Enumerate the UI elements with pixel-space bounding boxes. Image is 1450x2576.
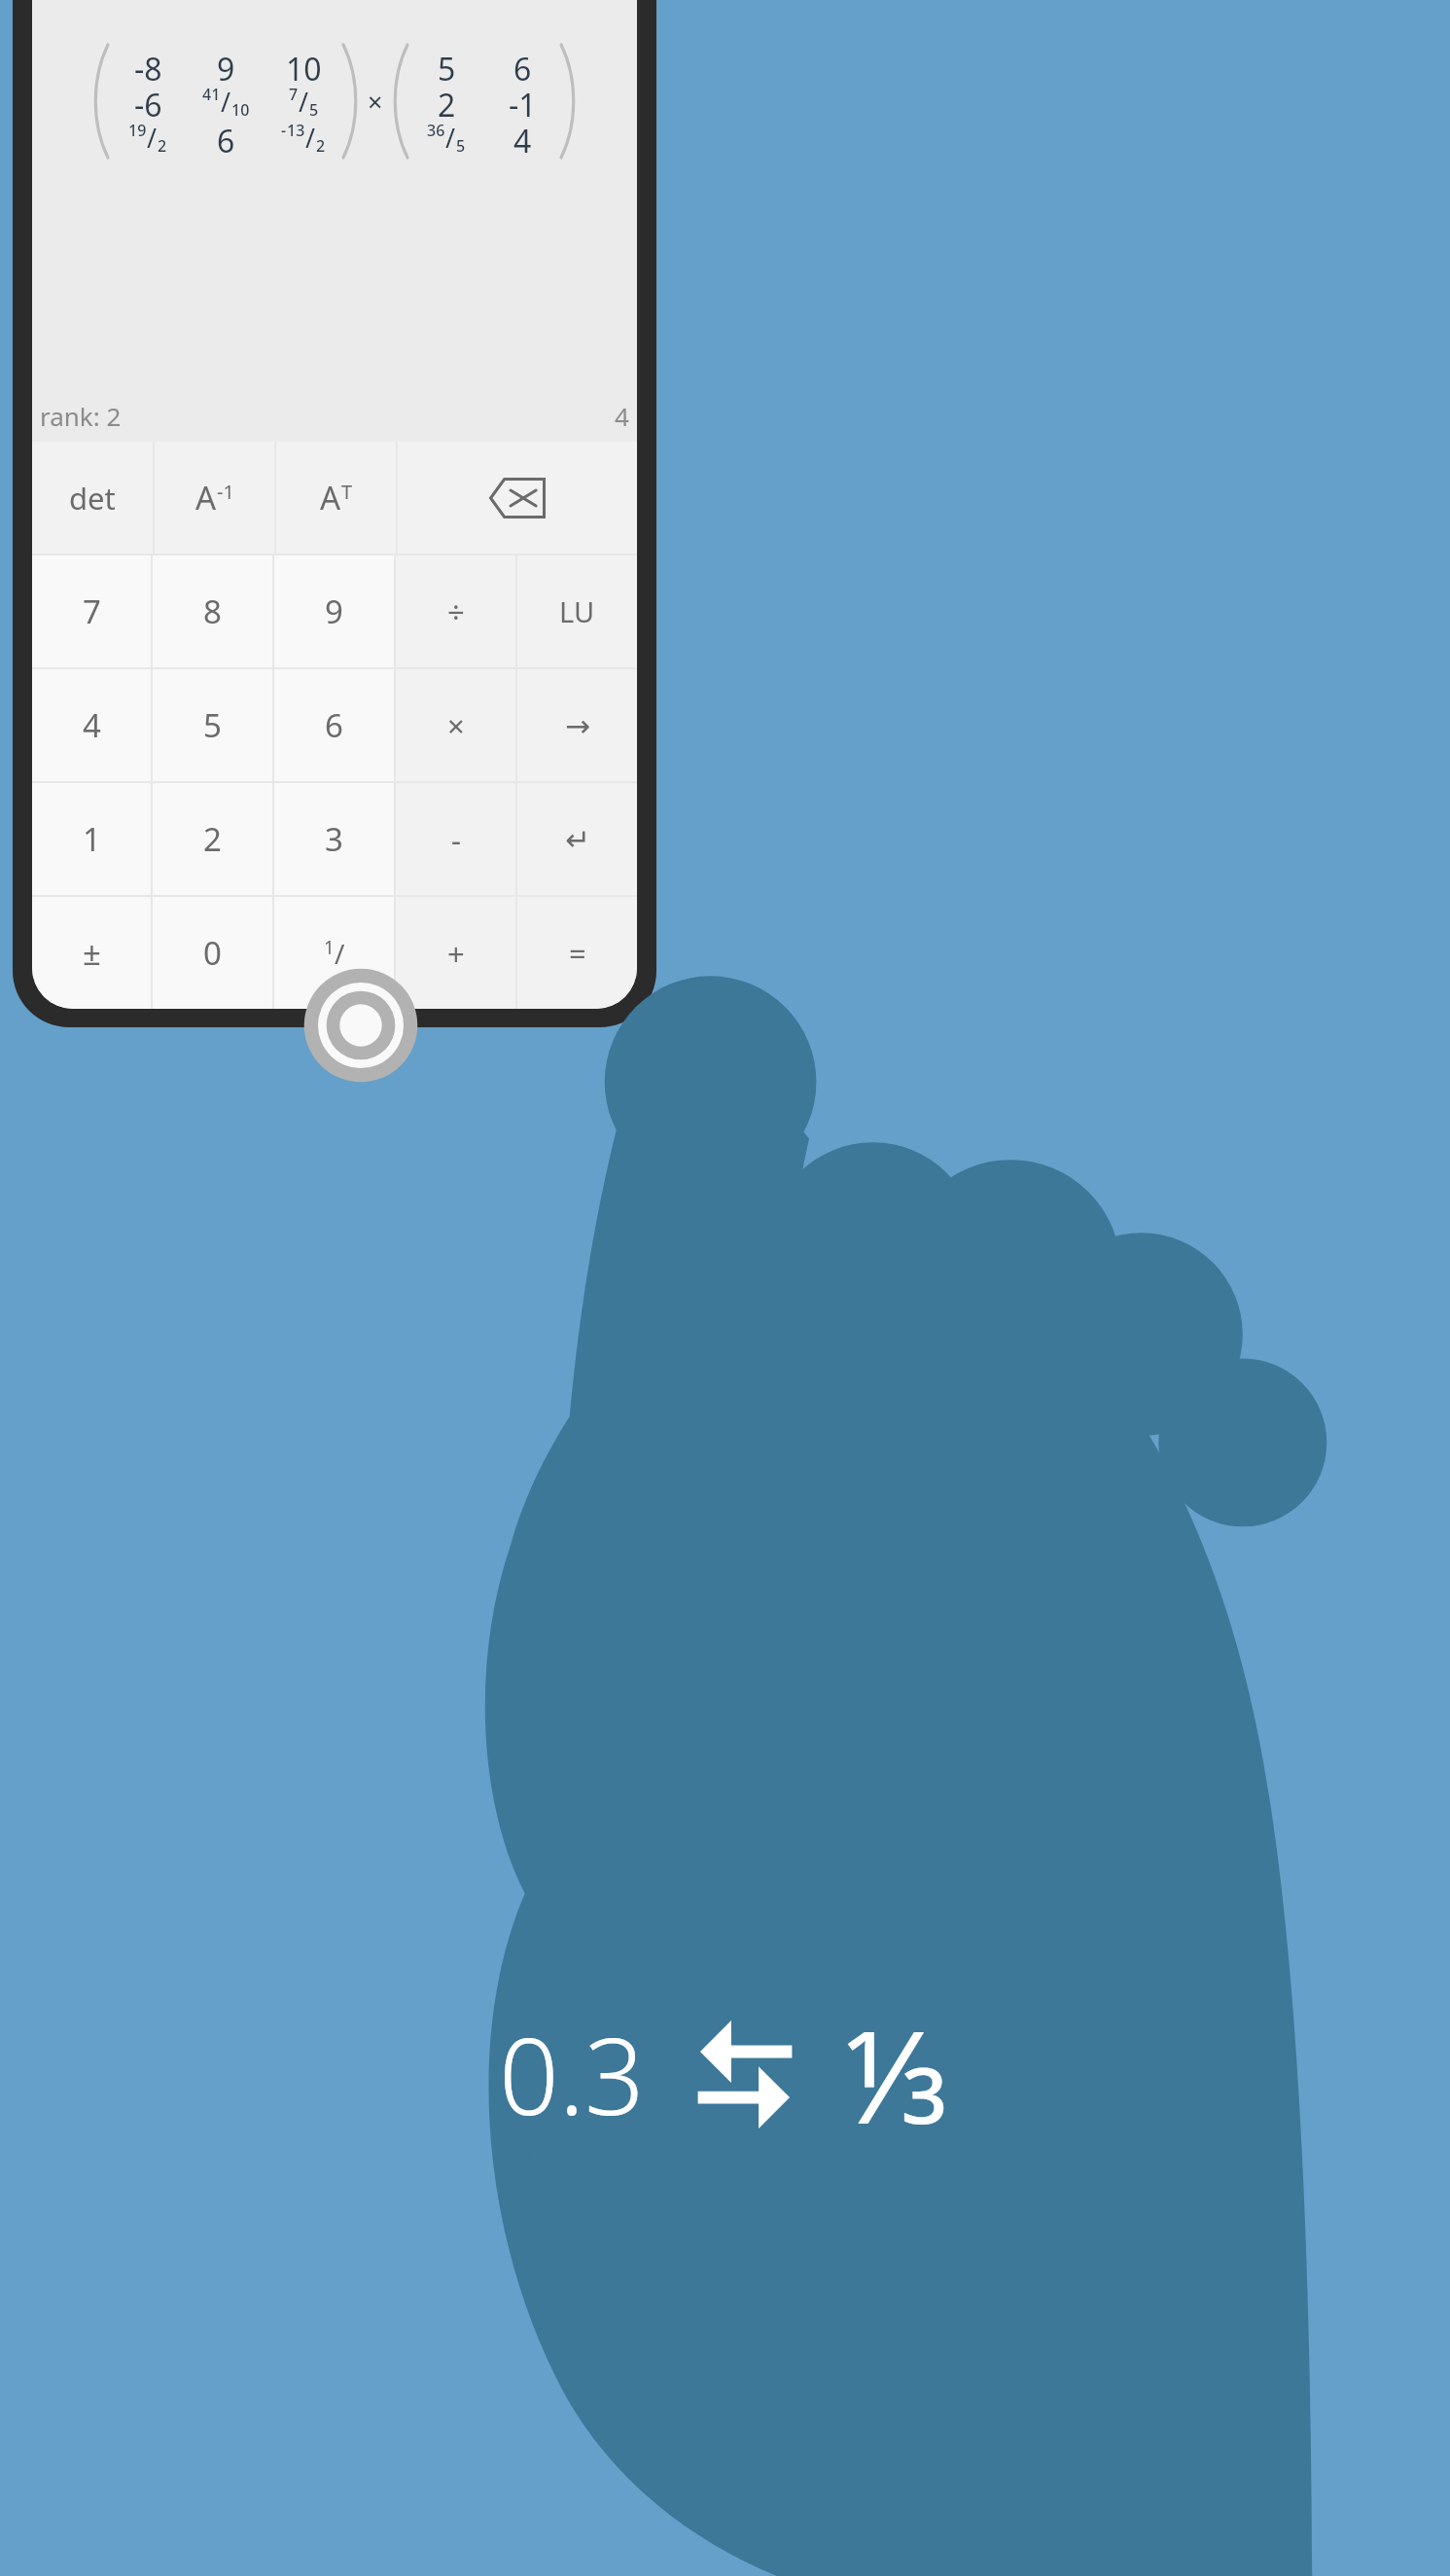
staticText: 10	[231, 99, 250, 120]
staticText: 5	[438, 48, 456, 84]
staticText: +	[447, 933, 465, 974]
button[interactable]: 9	[274, 555, 394, 667]
staticText: 1	[324, 935, 335, 960]
staticText: 0	[203, 931, 222, 975]
staticText: rank: 2	[40, 399, 122, 433]
staticText: A	[320, 476, 341, 519]
button[interactable]: =	[517, 897, 637, 1009]
staticText: -	[451, 819, 461, 860]
staticText: 2	[203, 817, 222, 861]
button[interactable]: A	[155, 442, 274, 554]
staticText: 6	[217, 120, 235, 156]
staticText: 9	[217, 48, 235, 84]
button[interactable]: 8	[153, 555, 272, 667]
staticText: 9	[325, 590, 343, 633]
staticText: 7	[289, 84, 299, 105]
staticText: -	[281, 120, 287, 141]
staticText: 2	[316, 135, 326, 156]
button[interactable]: ↵	[517, 783, 637, 895]
staticText: /	[221, 84, 231, 120]
staticText: /	[305, 120, 316, 156]
button[interactable]: 2	[153, 783, 272, 895]
staticText: ±	[83, 931, 101, 975]
button[interactable]: 1	[32, 783, 151, 895]
button[interactable]: LU	[517, 555, 637, 667]
staticText: 19	[128, 120, 147, 141]
staticText: 36	[427, 120, 445, 141]
button[interactable]: 7	[32, 555, 151, 667]
staticText: 1	[83, 817, 101, 861]
button[interactable]: 4	[32, 669, 151, 781]
staticText: 2	[438, 84, 456, 120]
staticText: ÷	[447, 591, 465, 632]
staticText: -1	[509, 84, 537, 120]
staticText: 3	[325, 817, 343, 861]
staticText: -1	[217, 479, 234, 505]
staticText: 5	[203, 703, 222, 747]
staticText: 6	[513, 48, 532, 84]
staticText: 0.3	[499, 2003, 645, 2146]
staticText: 5	[456, 135, 466, 156]
staticText: /	[445, 120, 456, 156]
staticText: LU	[559, 592, 595, 630]
staticText: ×	[447, 705, 465, 746]
button[interactable]: 5	[153, 669, 272, 781]
button[interactable]: ±	[32, 897, 151, 1009]
staticText: -6	[134, 84, 162, 120]
button[interactable]: det	[32, 442, 153, 554]
staticText: /	[335, 935, 345, 972]
staticText: ↵	[565, 822, 590, 857]
staticText: 4	[615, 399, 629, 433]
button[interactable]: Fraction	[274, 897, 394, 1009]
button[interactable]: 0	[153, 897, 272, 1009]
button[interactable]: +	[396, 897, 515, 1009]
staticText: T	[341, 479, 353, 505]
button[interactable]: 6	[274, 669, 394, 781]
staticText: 6	[325, 703, 343, 747]
staticText: 13	[287, 120, 305, 141]
button[interactable]: 3	[274, 783, 394, 895]
staticText: 4	[513, 120, 532, 156]
button[interactable]: ÷	[396, 555, 515, 667]
staticText: ×	[368, 84, 383, 120]
button[interactable]: A	[276, 442, 396, 554]
staticText: 10	[286, 48, 322, 84]
staticText: det	[69, 478, 116, 519]
staticText: 2	[158, 135, 167, 156]
staticText: ⅓	[845, 1986, 952, 2162]
staticText: /	[147, 120, 158, 156]
button[interactable]: ×	[396, 669, 515, 781]
button[interactable]: →	[517, 669, 637, 781]
button[interactable]: -	[396, 783, 515, 895]
button[interactable]: Backspace	[398, 442, 637, 554]
staticText: 7	[83, 590, 101, 633]
staticText: →	[565, 708, 590, 743]
staticText: 8	[203, 590, 222, 633]
staticText: 41	[202, 84, 221, 105]
staticText: 4	[83, 703, 101, 747]
staticText: -8	[134, 48, 162, 84]
staticText: A	[195, 476, 217, 519]
staticText: =	[569, 933, 586, 974]
staticText: /	[299, 84, 309, 120]
staticText: 5	[309, 99, 319, 120]
